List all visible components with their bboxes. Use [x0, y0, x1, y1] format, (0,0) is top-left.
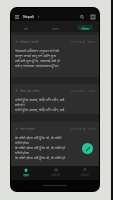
staticText: Nepali: [23, 14, 35, 19]
staticText: यस्तो हुन्छ सवाल, केहि पनि गर्दैन, सबै: [15, 97, 65, 102]
staticText: ११:२५: [88, 40, 96, 44]
button[interactable]: नतिजा: [70, 21, 99, 32]
staticText: शिक्षा सेवा आयोग: [20, 89, 40, 93]
staticText: लोकसेवा आयोग: [20, 40, 39, 44]
button[interactable]: प्रोफाइल: [70, 166, 99, 180]
button[interactable]: नेपाल सरकार: [11, 122, 99, 166]
button[interactable]: सूचना: [41, 21, 70, 32]
staticText: २०८०-०३-०४: [71, 127, 86, 131]
staticText: नेपाल सरकार: [20, 127, 35, 131]
staticText: के यस्तो होला भन्ने हुन्छ यो, के यस्तो: [15, 135, 62, 140]
staticText: ०९:१४: [88, 89, 96, 93]
button[interactable]: Grid view: [89, 13, 97, 21]
staticText: यस्तो होला: [15, 150, 29, 155]
staticText: २०८०-०३-१२: [71, 40, 86, 44]
staticText: सबै सबै कुरा हुन्छ, जसलाई सबै हो: [15, 58, 60, 63]
button[interactable]: लोकसेवा आयोग: [11, 35, 99, 77]
staticText: यस्तो होला: [15, 140, 29, 145]
staticText: गर्छन् जनताका आवश्यकता हुन्छ।: [15, 63, 59, 68]
button[interactable]: रुचाइएको: [41, 166, 70, 180]
staticText: सबै: [24, 26, 29, 30]
button[interactable]: Compose: [82, 143, 93, 154]
staticText: यस्तो हुन्छ सवाल, केहि पनि गर्दैन, सबै: [15, 107, 65, 112]
button[interactable]: सबै: [11, 21, 41, 32]
button[interactable]: Menu: [13, 13, 21, 21]
staticText: नतिजा: [81, 26, 89, 30]
staticText: ०८:०२: [88, 127, 96, 131]
staticText: २०८०-०३-०८: [71, 89, 86, 93]
staticText: रुचाइएको: [51, 173, 61, 177]
staticText: के यस्तो होला भन्ने हुन्छ यो, के यस्तो ह…: [15, 155, 66, 160]
staticText: कानून बनाई लागू गर्न सक्ने कुरा: [15, 53, 57, 58]
staticText: प्रोफाइल: [81, 173, 89, 177]
button[interactable]: Search: [78, 13, 86, 21]
staticText: नेपालको संविधान अनुसार राज्यले: [15, 48, 60, 53]
staticText: सूचना: [52, 26, 60, 30]
staticText: के यस्तो होला भन्ने हुन्छ यो, के यस्तो ह…: [15, 145, 66, 150]
button[interactable]: शिक्षा सेवा आयोग: [11, 84, 99, 114]
staticText: गृहपृष्ठ: [23, 173, 29, 177]
button[interactable]: गृहपृष्ठ: [11, 166, 41, 180]
staticText: सबै हो।: [15, 102, 25, 107]
